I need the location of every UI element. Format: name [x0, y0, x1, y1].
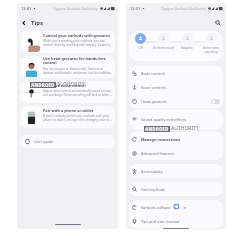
- staticText: Active noise canceling: [199, 46, 223, 54]
- staticText: Use head gestures for hands-free control: [43, 56, 113, 66]
- button[interactable]: Advanced features: [129, 146, 223, 160]
- staticText: Buds controls: [141, 71, 166, 76]
- button[interactable]: Earbuds software update: [129, 200, 223, 214]
- button[interactable]: Sound quality and effects: [129, 110, 223, 129]
- staticText: Manage connections: [141, 137, 181, 142]
- button[interactable]: Toggle: [211, 99, 220, 104]
- staticText: Earbuds software update: [141, 205, 186, 210]
- staticText: AUTHORITY: [171, 125, 199, 132]
- staticText: Off: [138, 46, 143, 50]
- staticText: Tips and user manual: [141, 219, 180, 224]
- button[interactable]: Off: [129, 33, 152, 50]
- button[interactable]: Search: [212, 17, 224, 29]
- staticText: Voice controls: [141, 85, 166, 90]
- staticText: Opppm Android Authority: [53, 6, 98, 11]
- staticText: User guide: [34, 139, 54, 144]
- staticText: 12:01: [21, 6, 32, 11]
- staticText: Find my Buds: [141, 187, 166, 192]
- staticText: Control your earbuds with gestures: [43, 33, 111, 38]
- staticText: Adjust noise control automatically based…: [43, 89, 113, 97]
- staticText: Tips: [31, 19, 44, 27]
- staticText: Advanced features: [141, 151, 175, 156]
- button[interactable]: Manage connections: [129, 132, 223, 146]
- button[interactable]: Ambient sound: [152, 33, 175, 50]
- staticText: Pair with a phone or tablet: [43, 108, 94, 113]
- button[interactable]: Accessibility: [129, 164, 223, 178]
- button[interactable]: Find my Buds: [129, 182, 223, 196]
- staticText: Sound quality and effects: [141, 117, 187, 122]
- button[interactable]: Control your earbuds with gestures: [20, 31, 115, 53]
- button[interactable]: User guide: [20, 135, 115, 148]
- button[interactable]: Adaptive: [175, 33, 199, 50]
- staticText: AUTHORITY: [57, 81, 85, 88]
- staticText: Ambient sound: [153, 46, 174, 50]
- button[interactable]: Tips and user manual: [129, 214, 223, 228]
- button[interactable]: Use head gestures for hands-free control: [20, 56, 115, 78]
- staticText: Opppm Android Authority: [161, 6, 206, 11]
- staticText: If you're already paired your earbuds wi…: [43, 114, 113, 122]
- staticText: Adaptive: [181, 46, 193, 50]
- button[interactable]: Active noise canceling: [199, 33, 223, 54]
- button[interactable]: Back: [17, 15, 31, 30]
- staticText: While you're wearing your earbuds, you c…: [43, 39, 113, 47]
- staticText: You can answer or decline calls, listen …: [43, 67, 113, 74]
- staticText: Head gestures: [141, 99, 167, 104]
- staticText: Adaptive noise control: [43, 83, 86, 88]
- staticText: ANDROID: [145, 126, 169, 132]
- button[interactable]: Head gestures: [129, 94, 223, 108]
- button[interactable]: Buds controls: [129, 66, 223, 80]
- staticText: 12:01: [130, 6, 141, 11]
- staticText: Accessibility: [141, 169, 163, 174]
- button[interactable]: Adaptive noise control: [20, 81, 115, 103]
- button[interactable]: Pair with a phone or tablet: [20, 106, 115, 128]
- staticText: ANDROID: [31, 82, 55, 88]
- button[interactable]: Voice controls: [129, 80, 223, 94]
